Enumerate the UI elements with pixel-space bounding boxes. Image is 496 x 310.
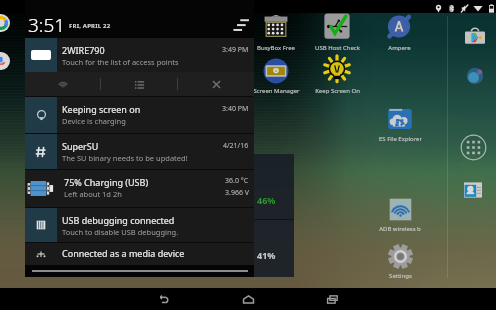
button[interactable]: Recent apps [320, 288, 344, 310]
button[interactable]: Keeping screen on [25, 97, 254, 133]
staticText: Keeping screen on [62, 103, 141, 115]
staticText: ADB wireless b [379, 225, 421, 233]
staticText: 2WIRE790 [62, 44, 105, 56]
staticText: 3.966 V [225, 188, 249, 198]
staticText: Keep Screen On [315, 87, 360, 95]
button[interactable]: App shortcut [461, 23, 489, 51]
button[interactable]: ADB wireless b [370, 194, 430, 233]
button[interactable]: SuperSU [25, 134, 254, 169]
button[interactable]: All apps [458, 132, 488, 162]
staticText: USB Host Check [315, 44, 360, 52]
staticText: Ampere [388, 44, 411, 52]
staticText: Touch for the list of access points [62, 57, 179, 67]
button[interactable]: Home [236, 288, 260, 310]
button[interactable]: BusyBox Free [246, 13, 306, 52]
staticText: USB debugging connected [62, 214, 175, 226]
staticText: Left about 1d 2h [64, 189, 122, 199]
staticText: BusyBox Free [257, 44, 295, 52]
staticText: 36.0 °C [225, 176, 249, 186]
staticText: FRI, APRIL 22 [69, 22, 111, 30]
button[interactable]: Settings [370, 241, 430, 280]
button[interactable]: 2WIRE790 [25, 38, 254, 72]
staticText: 3:51 [28, 12, 66, 38]
button[interactable]: USB debugging connected [25, 208, 254, 242]
button[interactable]: Networks [101, 72, 177, 96]
staticText: Screen Manager [253, 87, 300, 95]
staticText: Touch to disable USB debugging. [62, 227, 179, 237]
staticText: Connected as a media device [62, 247, 185, 259]
staticText: 75% Charging (USB) [64, 176, 149, 188]
button[interactable]: Dismiss [178, 72, 254, 96]
staticText: 4/21/16 [223, 141, 249, 151]
button[interactable]: Screen Manager [246, 56, 306, 95]
staticText: SuperSU [62, 140, 99, 152]
button[interactable]: ES File Explorer [370, 104, 430, 143]
button[interactable]: 75% Charging (USB) [25, 170, 254, 207]
staticText: Settings [389, 272, 412, 280]
button[interactable]: Connected as a media device [25, 243, 254, 265]
button[interactable]: App shortcut [461, 62, 489, 90]
button[interactable]: Keep Screen On [307, 56, 367, 95]
button[interactable]: Ampere [369, 13, 429, 52]
staticText: 41% [257, 249, 276, 261]
staticText: 3:40 PM [222, 104, 249, 114]
button[interactable]: USB Host Check [307, 13, 367, 52]
button[interactable]: App shortcut [459, 176, 487, 204]
staticText: Device is charging [62, 116, 126, 126]
staticText: 3:49 PM [222, 45, 249, 55]
button[interactable]: Quick settings [230, 14, 252, 36]
button[interactable]: Back [152, 288, 176, 310]
staticText: ES File Explorer [379, 135, 422, 143]
staticText: The SU binary needs to be updated! [62, 153, 188, 163]
button[interactable]: Wi-Fi [25, 72, 100, 96]
staticText: 46% [257, 194, 276, 206]
